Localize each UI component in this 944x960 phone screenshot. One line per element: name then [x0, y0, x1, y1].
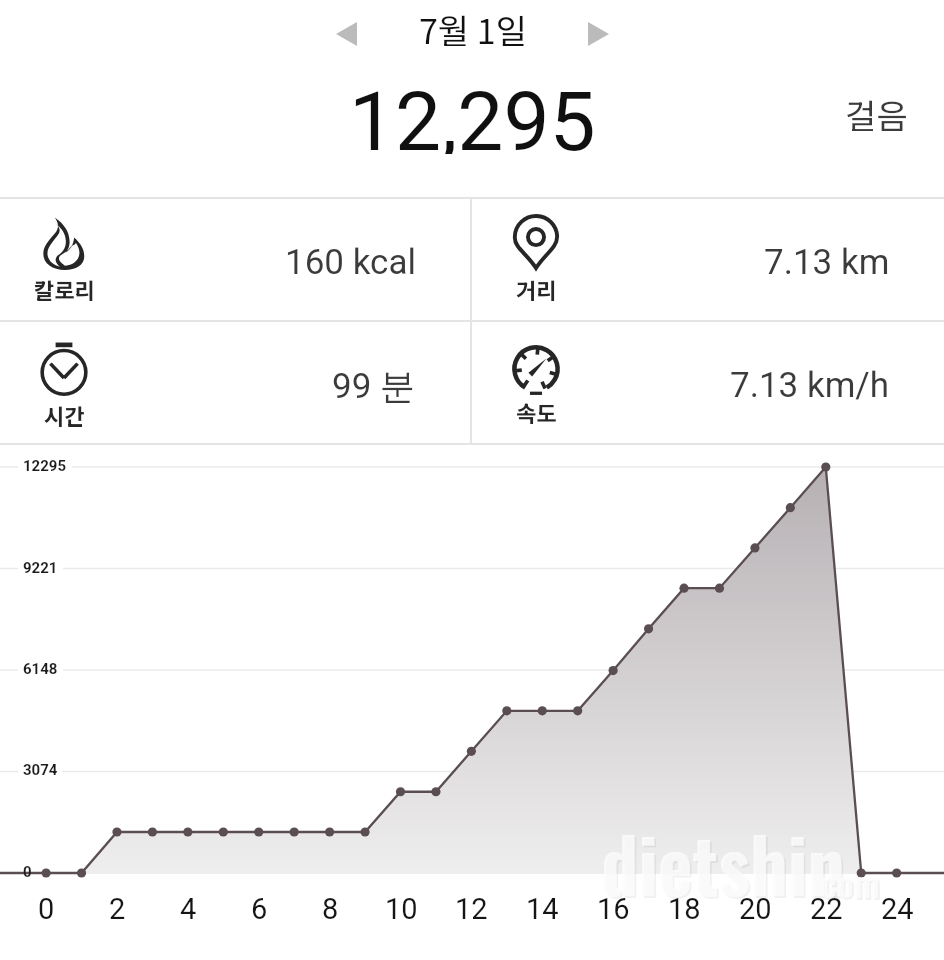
staticText: 22	[810, 892, 843, 926]
staticText: 0	[38, 892, 55, 926]
staticText: 6148	[23, 660, 58, 678]
staticText: 24	[881, 892, 914, 926]
staticText: 7.13 km/h	[730, 365, 890, 406]
staticText: 8	[322, 892, 339, 926]
staticText: 14	[526, 892, 559, 926]
staticText: 7.13 km	[764, 242, 890, 283]
staticText: com	[820, 856, 880, 908]
staticText: 16	[597, 892, 630, 926]
staticText: 99 분	[332, 364, 416, 408]
staticText: 12,295	[349, 74, 596, 154]
staticText: 160 kcal	[285, 242, 416, 283]
staticText: dietshin	[601, 808, 845, 918]
staticText: 3074	[23, 761, 58, 779]
staticText: 10	[385, 892, 418, 926]
button[interactable]: 칼로리	[0, 198, 470, 321]
button[interactable]: 거리	[472, 198, 944, 321]
staticText: 거리	[516, 273, 557, 305]
staticText: 칼로리	[34, 273, 95, 305]
staticText: com	[822, 858, 882, 910]
staticText: dietshin	[603, 810, 847, 920]
staticText: 20	[739, 892, 772, 926]
staticText: 9221	[23, 559, 58, 577]
button[interactable]: 시간	[0, 321, 470, 444]
staticText: 2	[109, 892, 126, 926]
staticText: 18	[668, 892, 701, 926]
staticText: 12	[455, 892, 488, 926]
staticText: 12295	[23, 457, 67, 475]
button[interactable]: Previous day	[322, 10, 370, 58]
staticText: 6	[251, 892, 268, 926]
button[interactable]: 속도	[472, 321, 944, 444]
button[interactable]: Next day	[574, 10, 622, 58]
staticText: 4	[180, 892, 197, 926]
staticText: 속도	[516, 396, 557, 428]
staticText: 0	[23, 863, 32, 881]
staticText: 시간	[44, 399, 85, 431]
staticText: 걸음	[845, 90, 908, 139]
staticText: 7월 1일	[419, 5, 527, 54]
